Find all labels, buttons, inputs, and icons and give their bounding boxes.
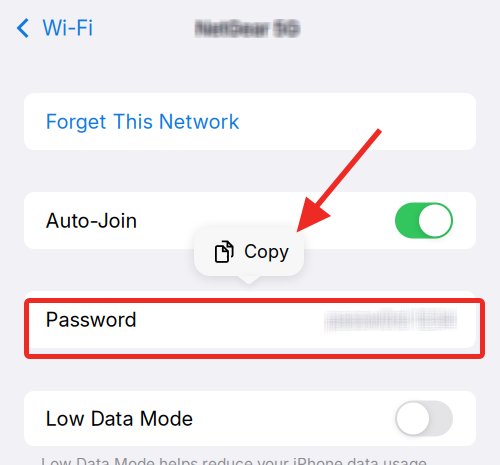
staticText: Low Data Mode [45,406,193,431]
staticText: passw0rd 1234 [331,306,457,327]
staticText: Auto-Join [45,208,137,233]
button[interactable]: Copy [194,227,304,284]
staticText: NetGear 5G [197,17,300,40]
staticText: passw0rd 1234 [323,314,449,335]
staticText: NetGear 5G [197,18,300,41]
staticText: NetGear 5G [196,17,299,40]
staticText: passw0rd 1234 [323,306,449,327]
staticText: NetGear 5G [196,14,299,37]
staticText: NetGear 5G [196,20,299,43]
staticText: passw0rd 1234 [331,304,457,325]
staticText: NetGear 5G [197,20,300,43]
staticText: passw0rd 1234 [325,304,451,325]
staticText: NetGear 5G [193,17,296,40]
button[interactable]: Forget This Network [24,93,476,150]
staticText: NetGear 5G [193,14,296,37]
staticText: passw0rd 1234 [328,309,454,330]
staticText: NetGear 5G [194,15,297,38]
staticText: NetGear 5G [197,15,300,38]
staticText: Low Data Mode helps reduce your iPhone d… [41,455,431,465]
staticText: Forget This Network [45,109,239,134]
staticText: passw0rd 1234 [331,312,457,333]
staticText: passw0rd 1234 [325,306,451,327]
staticText: NetGear 5G [193,18,296,41]
staticText: NetGear 5G [194,14,297,37]
staticText: NetGear 5G [196,15,299,38]
staticText: passw0rd 1234 [328,306,454,327]
staticText: passw0rd 1234 [325,314,451,335]
staticText: passw0rd 1234 [333,312,459,333]
button[interactable]: Wi-Fi [17,11,109,45]
button[interactable]: Password [24,291,476,348]
staticText: NetGear 5G [199,17,302,40]
staticText: NetGear 5G [194,18,297,41]
staticText: Password [45,307,136,332]
staticText: passw0rd 1234 [331,314,457,335]
staticText: NetGear 5G [199,14,302,37]
staticText: passw0rd 1234 [331,309,457,330]
staticText: NetGear 5G [194,20,297,43]
staticText: NetGear 5G [194,17,297,40]
staticText: passw0rd 1234 [328,314,454,335]
staticText: NetGear 5G [197,14,300,37]
staticText: NetGear 5G [196,18,299,41]
staticText: NetGear 5G [199,20,302,43]
button[interactable]: Auto-Join [24,192,476,249]
staticText: passw0rd 1234 [333,314,459,335]
staticText: NetGear 5G [193,15,296,38]
staticText: NetGear 5G [199,15,302,38]
staticText: passw0rd 1234 [328,312,454,333]
staticText: passw0rd 1234 [333,304,459,325]
staticText: passw0rd 1234 [333,309,459,330]
staticText: passw0rd 1234 [333,306,459,327]
staticText: Wi-Fi [42,15,93,40]
staticText: NetGear 5G [199,18,302,41]
staticText: passw0rd 1234 [323,304,449,325]
staticText: passw0rd 1234 [325,312,451,333]
staticText: NetGear 5G [193,20,296,43]
button[interactable]: Low Data Mode [24,391,476,446]
staticText: passw0rd 1234 [328,304,454,325]
staticText: passw0rd 1234 [323,312,449,333]
staticText: passw0rd 1234 [323,309,449,330]
staticText: Copy [244,241,289,262]
staticText: passw0rd 1234 [325,309,451,330]
